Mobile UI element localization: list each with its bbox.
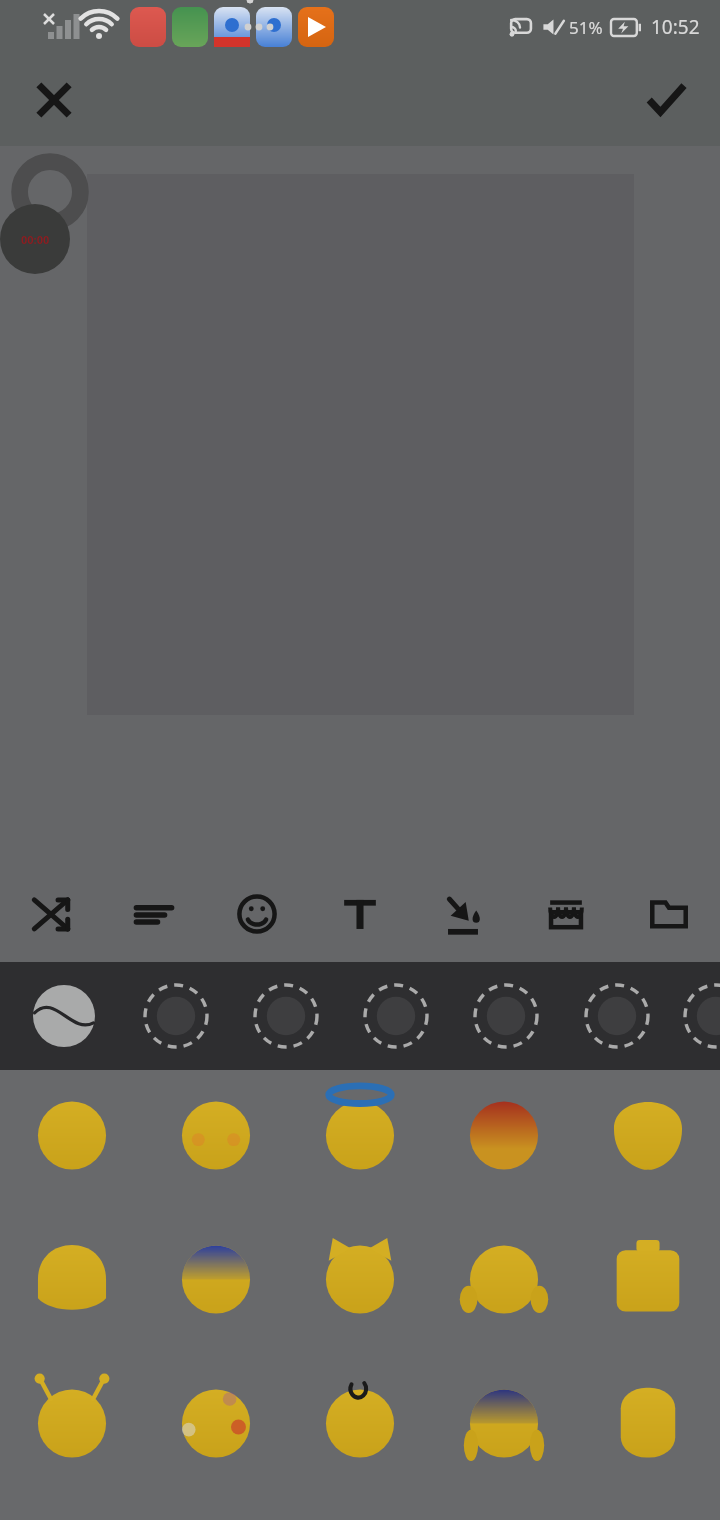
button[interactable]: Emoji 14 [432,1388,576,1520]
button[interactable]: Emoji 1 [0,1100,144,1244]
button[interactable]: Emoji 13 [288,1388,432,1520]
other: Battery [611,19,641,36]
other: Rotate handle [12,154,88,230]
button[interactable]: Emoji 6 [0,1244,144,1388]
staticText: 10:52 [651,14,700,40]
other: Muted [541,16,565,38]
button[interactable]: Shape 5 [411,962,514,1070]
button[interactable]: Shape 7 [617,962,720,1070]
button[interactable]: Emoji 9 [432,1244,576,1388]
button[interactable]: Fill colour [411,866,514,962]
button[interactable]: Emoji 15 [576,1388,720,1520]
staticText: 51% [569,16,603,39]
button[interactable]: Shape 3 [205,962,308,1070]
button[interactable]: Emoji 8 [288,1244,432,1388]
button[interactable]: Align [102,866,205,962]
button[interactable]: Close [18,64,90,136]
button[interactable]: Emoji 3 [288,1100,432,1244]
button[interactable]: Emoji 4 [432,1100,576,1244]
button[interactable]: Timer [0,204,70,274]
button[interactable]: Shape 6 [514,962,617,1070]
button[interactable]: Emoji 5 [576,1100,720,1244]
button[interactable]: Emoji 10 [576,1244,720,1388]
button[interactable]: Emoji 7 [144,1244,288,1388]
staticText: 00:00 [21,232,50,247]
button[interactable]: Emoji 11 [0,1388,144,1520]
button[interactable]: Text [308,866,411,962]
button[interactable]: Store [514,866,617,962]
other: Cast [507,16,533,38]
button[interactable]: Emoji 12 [144,1388,288,1520]
button[interactable]: Folder [617,866,720,962]
button[interactable]: Emoji 2 [144,1100,288,1244]
button[interactable]: Shape 1 [0,962,102,1070]
button[interactable]: Shape 4 [308,962,411,1070]
button[interactable]: Done [630,64,702,136]
button[interactable]: Emoji [205,866,308,962]
button[interactable]: Shuffle [0,866,102,962]
button[interactable]: Shape 2 [102,962,205,1070]
